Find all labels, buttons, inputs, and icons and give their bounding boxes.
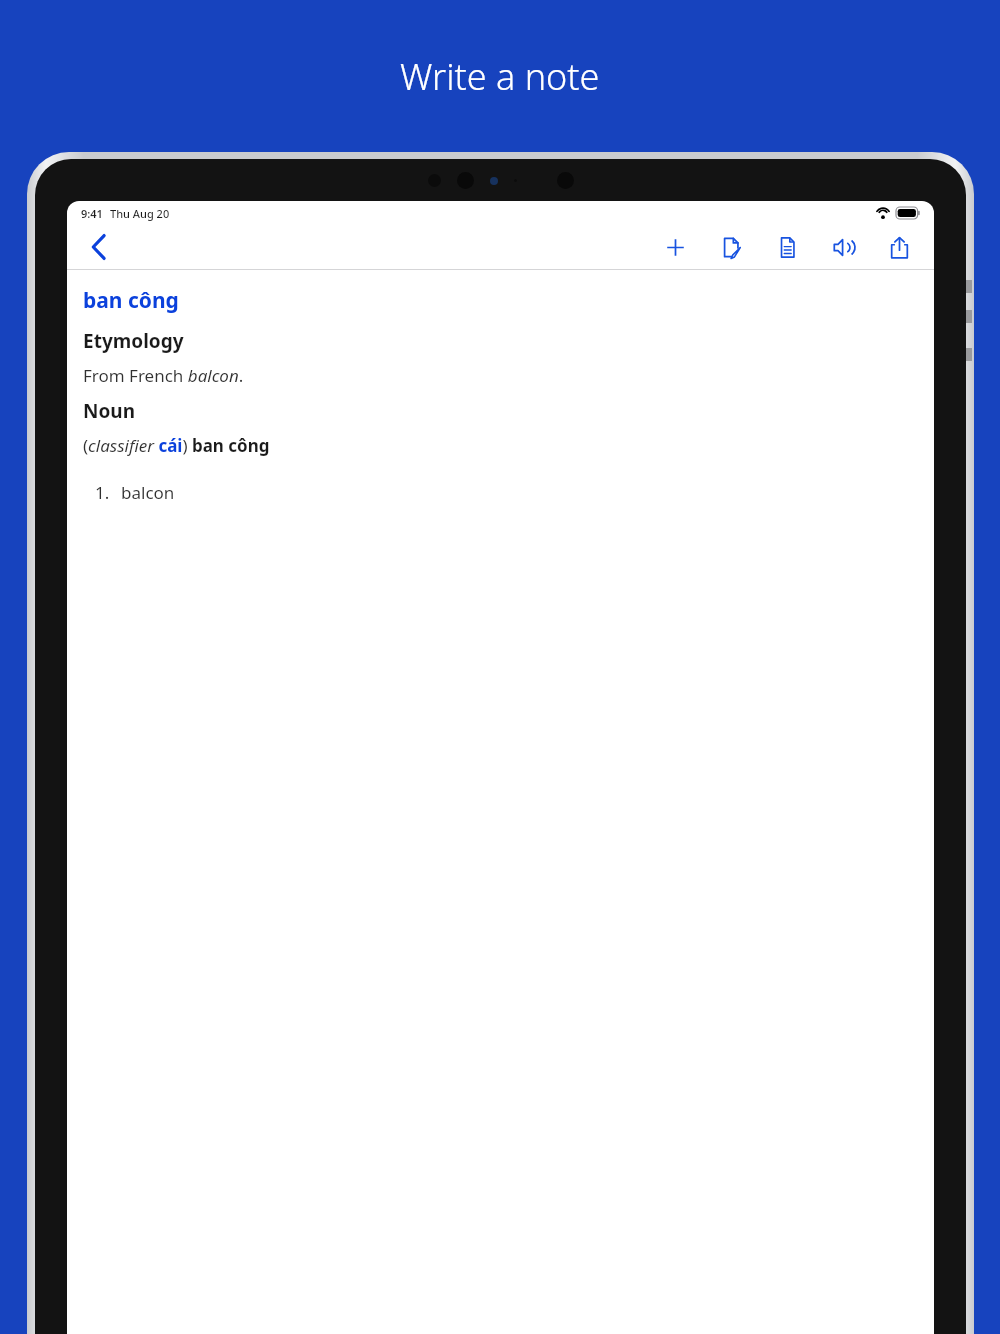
- staticText: 9:41: [81, 206, 103, 221]
- staticText: From French balcon.: [83, 364, 244, 387]
- button[interactable]: Add: [658, 230, 692, 264]
- button[interactable]: Share: [882, 230, 916, 264]
- button[interactable]: Back: [79, 227, 119, 267]
- button[interactable]: Document: [770, 230, 804, 264]
- staticText: Write a note: [400, 52, 600, 101]
- staticText: Thu Aug 20: [110, 206, 170, 221]
- staticText: Etymology: [83, 328, 184, 354]
- staticText: Noun: [83, 398, 136, 424]
- staticText: balcon: [121, 481, 175, 504]
- button[interactable]: Speak: [826, 230, 860, 264]
- staticText: 1.: [95, 481, 110, 504]
- staticText: (classifier cái) ban công: [83, 434, 270, 457]
- button[interactable]: Edit note: [714, 230, 748, 264]
- staticText: ban công: [83, 286, 179, 315]
